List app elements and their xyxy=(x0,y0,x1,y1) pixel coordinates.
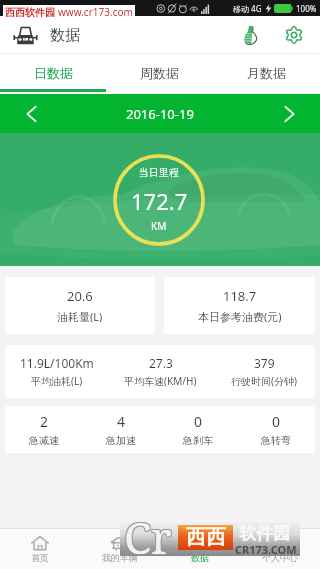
button[interactable]: 个人中心 xyxy=(240,529,320,569)
button[interactable]: 2 xyxy=(5,406,82,453)
staticText: 379 xyxy=(254,355,275,371)
staticText: 本日参考油费(元) xyxy=(198,309,282,324)
button[interactable]: 数据 xyxy=(160,529,240,569)
staticText: 2016-10-19 xyxy=(126,105,194,123)
staticText: 27.3 xyxy=(149,355,173,371)
staticText: 软件园 xyxy=(239,523,290,544)
staticText: 4 xyxy=(117,412,126,431)
button[interactable]: My vehicle xyxy=(10,20,40,50)
staticText: 平均油耗(L) xyxy=(31,374,83,388)
button[interactable]: 27.3 xyxy=(109,345,212,398)
staticText: 行驶时间(分钟) xyxy=(231,374,297,388)
staticText: 个人中心 xyxy=(262,552,298,563)
staticText: 急转弯 xyxy=(261,434,291,447)
staticText: 日数据 xyxy=(34,65,73,81)
button[interactable]: 首页 xyxy=(0,529,80,569)
staticText: 周数据 xyxy=(140,65,179,81)
staticText: www.cr173.com xyxy=(58,5,133,19)
staticText: Cr xyxy=(123,507,171,567)
staticText: Cr xyxy=(123,508,171,568)
staticText: Cr xyxy=(125,506,173,566)
staticText: 西西 xyxy=(186,525,226,550)
staticText: 20.6 xyxy=(67,287,93,305)
staticText: 172.7 xyxy=(131,186,188,216)
staticText: 当日里程 xyxy=(139,166,179,179)
staticText: Cr xyxy=(124,507,172,567)
staticText: 数据 xyxy=(191,552,209,563)
staticText: 0 xyxy=(194,412,203,431)
staticText: 我的车辆 xyxy=(102,552,138,563)
staticText: Cr xyxy=(124,508,172,568)
staticText: 急减速 xyxy=(29,434,59,447)
staticText: KM xyxy=(151,219,167,233)
button[interactable]: 我的车辆 xyxy=(80,529,160,569)
button[interactable]: 118.7 xyxy=(164,277,315,334)
staticText: 首页 xyxy=(31,552,49,563)
staticText: 100% xyxy=(296,3,317,14)
staticText: CR173.COM xyxy=(235,542,297,557)
staticText: 118.7 xyxy=(223,287,257,305)
staticText: 油耗量(L) xyxy=(57,309,103,324)
button[interactable]: Next day xyxy=(258,94,320,133)
staticText: 平均车速(KM/H) xyxy=(124,374,197,388)
staticText: Cr xyxy=(125,507,173,567)
button[interactable]: 379 xyxy=(212,345,315,398)
button[interactable]: Settings xyxy=(278,19,310,51)
button[interactable]: Fuel cost xyxy=(234,19,266,51)
button[interactable]: 20.6 xyxy=(5,277,155,334)
staticText: Cr xyxy=(123,506,171,566)
staticText: 0 xyxy=(272,412,281,431)
staticText: Cr xyxy=(125,508,173,568)
button[interactable]: 4 xyxy=(82,406,159,453)
button[interactable]: 日数据 xyxy=(0,54,106,94)
staticText: 急刹车 xyxy=(183,434,213,447)
staticText: 西西软件园 xyxy=(5,6,55,19)
staticText: Cr xyxy=(124,506,172,566)
staticText: 移动 4G xyxy=(233,3,262,14)
staticText: 11.9L/100Km xyxy=(20,355,94,371)
button[interactable]: 周数据 xyxy=(106,54,213,94)
button[interactable]: 月数据 xyxy=(213,54,320,94)
button[interactable]: Previous day xyxy=(0,94,62,133)
staticText: 急加速 xyxy=(106,434,136,447)
button[interactable]: 11.9L/100Km xyxy=(5,345,109,398)
staticText: 数据 xyxy=(50,26,80,45)
staticText: 月数据 xyxy=(247,65,286,81)
staticText: 2 xyxy=(40,412,49,431)
button[interactable]: 0 xyxy=(159,406,237,453)
button[interactable]: 0 xyxy=(237,406,315,453)
